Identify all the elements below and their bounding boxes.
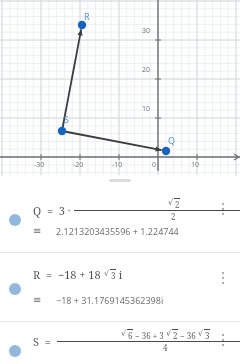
staticText: ≡: [33, 294, 42, 306]
staticText: S =: [33, 334, 57, 349]
staticText: R: [84, 10, 90, 22]
staticText: -30: [34, 160, 45, 170]
staticText: -10: [112, 160, 123, 170]
button[interactable]: Toggle visibility: [0, 265, 240, 327]
staticText: -20: [73, 160, 84, 170]
staticText: 20: [142, 65, 151, 75]
button[interactable]: Toggle visibility: [9, 214, 21, 226]
staticText: − 36 + 3: [133, 330, 166, 341]
staticText: 4: [163, 342, 168, 353]
staticText: √: [166, 329, 172, 338]
button[interactable]: More options: [215, 199, 231, 219]
staticText: 2: [171, 211, 176, 222]
staticText: Q: [168, 134, 176, 146]
staticText: 10: [142, 104, 151, 114]
staticText: √: [104, 269, 110, 278]
staticText: i: [116, 267, 123, 282]
button[interactable]: Toggle visibility: [9, 345, 21, 357]
staticText: R = −18 + 18: [33, 267, 104, 282]
staticText: Q = 3 ·: [33, 203, 74, 218]
staticText: −18 + 31.1769145362398i: [56, 294, 164, 306]
staticText: 2.1213203435596 + 1.224744: [56, 225, 179, 237]
staticText: S: [64, 113, 69, 125]
staticText: √: [121, 329, 127, 338]
staticText: √: [168, 198, 174, 207]
staticText: √: [198, 329, 204, 338]
staticText: − 36: [178, 330, 198, 341]
staticText: 2: [173, 330, 178, 341]
staticText: 30: [142, 26, 151, 36]
button[interactable]: More options: [215, 268, 231, 288]
staticText: 3: [111, 270, 116, 281]
staticText: 6: [128, 330, 133, 341]
button[interactable]: Toggle visibility: [9, 283, 21, 295]
staticText: 3: [205, 330, 210, 341]
button[interactable]: More options: [215, 330, 231, 350]
staticText: ≡: [33, 225, 42, 237]
staticText: 2: [175, 199, 180, 210]
button[interactable]: Toggle visibility: [0, 327, 240, 364]
staticText: 10: [191, 160, 200, 170]
staticText: 0: [152, 160, 157, 170]
button[interactable]: Toggle visibility: [0, 196, 240, 258]
